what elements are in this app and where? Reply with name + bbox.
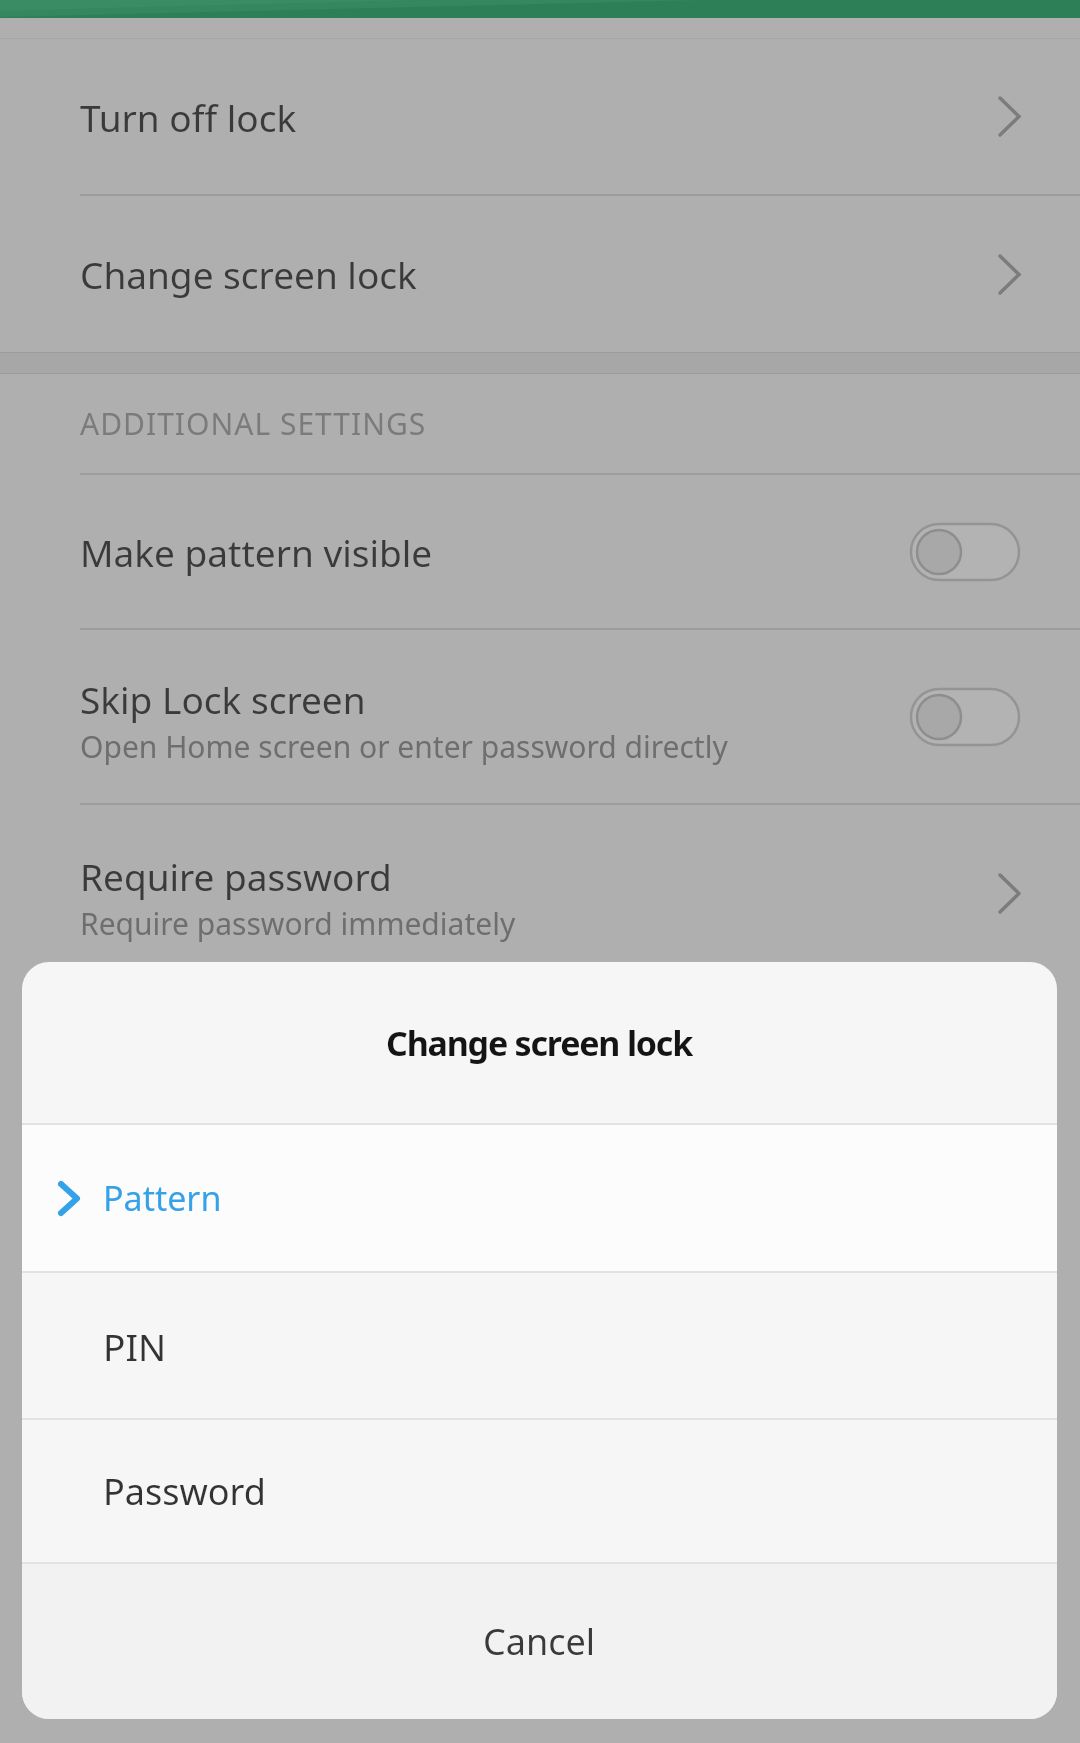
button[interactable]: Make pattern visible bbox=[0, 475, 1080, 628]
button[interactable]: Require password bbox=[0, 805, 1080, 982]
button[interactable]: Skip Lock screen bbox=[0, 630, 1080, 803]
staticText: PIN bbox=[103, 1321, 167, 1371]
staticText: Require password immediately bbox=[80, 903, 516, 944]
button[interactable]: Pattern bbox=[22, 1125, 1057, 1271]
staticText: Open Home screen or enter password direc… bbox=[80, 726, 728, 767]
staticText: Password bbox=[103, 1467, 266, 1516]
staticText: Make pattern visible bbox=[80, 527, 433, 577]
staticText: Change screen lock bbox=[80, 249, 417, 299]
staticText: Pattern bbox=[103, 1175, 222, 1221]
staticText: ADDITIONAL SETTINGS bbox=[80, 403, 427, 444]
staticText: Change screen lock bbox=[386, 1020, 693, 1066]
button[interactable]: Cancel bbox=[22, 1564, 1057, 1719]
staticText: Skip Lock screen bbox=[80, 674, 366, 724]
button[interactable]: PIN bbox=[22, 1273, 1057, 1418]
button[interactable]: Password bbox=[22, 1420, 1057, 1562]
button[interactable]: Turn off lock bbox=[0, 39, 1080, 194]
button[interactable]: Change screen lock bbox=[0, 196, 1080, 352]
staticText: Turn off lock bbox=[80, 92, 297, 142]
staticText: Cancel bbox=[483, 1617, 596, 1666]
staticText: Require password bbox=[80, 851, 392, 901]
